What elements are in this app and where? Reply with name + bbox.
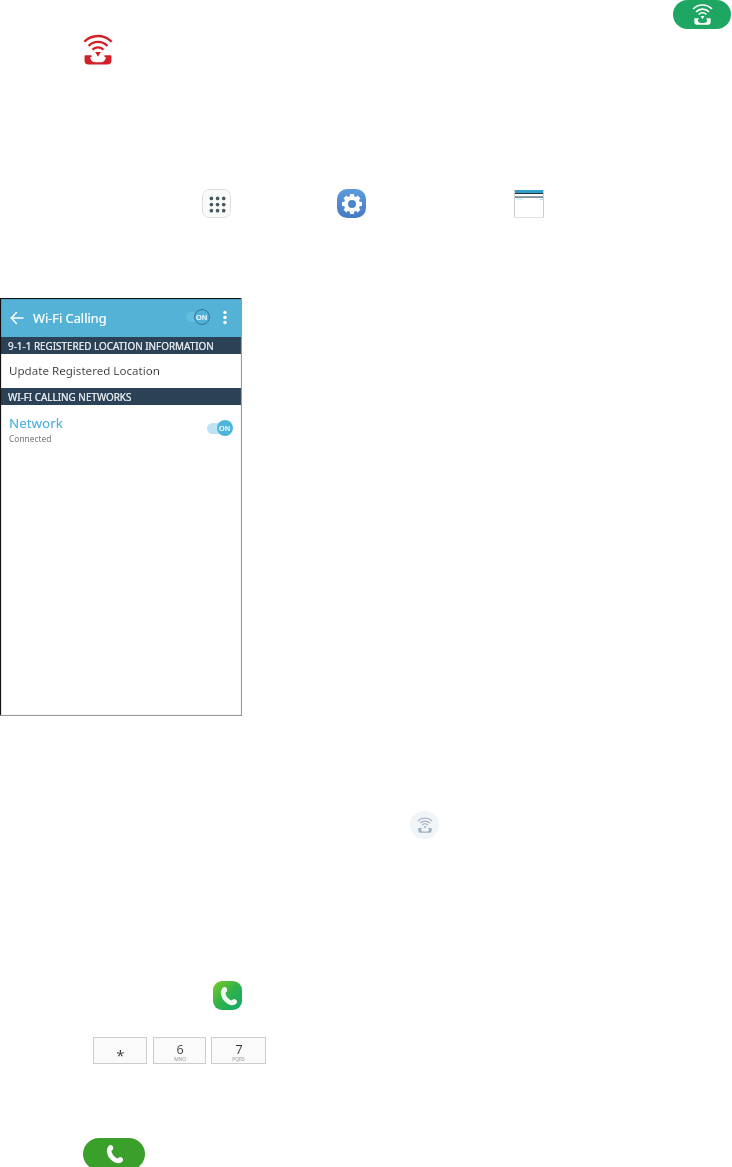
staticText: 9-1-1 REGISTERED LOCATION INFORMATION bbox=[8, 339, 214, 352]
staticText: MNO bbox=[174, 1056, 186, 1063]
staticText: Update Registered Location bbox=[9, 363, 160, 379]
button[interactable]: Phone bbox=[213, 981, 242, 1010]
button[interactable]: * bbox=[93, 1037, 147, 1064]
button[interactable]: Wi-Fi Calling bbox=[84, 36, 112, 65]
staticText: ON bbox=[196, 312, 208, 322]
staticText: PQRS bbox=[232, 1056, 245, 1063]
button[interactable]: Back bbox=[5, 306, 28, 329]
staticText: 7 bbox=[235, 1041, 243, 1058]
button[interactable]: 6 bbox=[153, 1037, 206, 1064]
button[interactable]: Network toggle bbox=[205, 418, 237, 438]
button[interactable]: Wi-Fi Calling toggle bbox=[185, 304, 213, 330]
staticText: Network bbox=[9, 414, 63, 432]
staticText: Wi-Fi Calling bbox=[33, 309, 107, 326]
staticText: WI-FI CALLING NETWORKS bbox=[8, 390, 132, 403]
button[interactable]: Wi-Fi Calling status icon bbox=[410, 811, 439, 839]
button[interactable]: 7 bbox=[211, 1037, 266, 1064]
button[interactable]: Settings bbox=[337, 189, 366, 218]
staticText: * bbox=[116, 1045, 125, 1065]
button[interactable]: Wi-Fi Calling enabled bbox=[673, 0, 731, 29]
button[interactable]: Update Registered Location bbox=[0, 354, 242, 388]
staticText: Connected bbox=[9, 433, 52, 444]
button[interactable]: Apps bbox=[202, 189, 231, 218]
button[interactable]: Call bbox=[83, 1138, 145, 1167]
button[interactable]: Network bbox=[0, 405, 242, 450]
staticText: ON bbox=[219, 423, 231, 433]
button[interactable]: More options bbox=[216, 305, 233, 329]
button[interactable]: Wi-Fi Calling screen bbox=[514, 190, 544, 218]
staticText: 6 bbox=[176, 1041, 184, 1058]
